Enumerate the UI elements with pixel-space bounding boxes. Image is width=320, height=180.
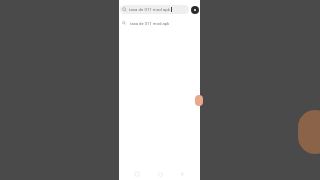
staticText: taxa de 011 mod apk — [130, 21, 170, 26]
button[interactable]: Back — [177, 169, 187, 179]
button[interactable]: Recent apps — [132, 169, 142, 179]
button[interactable]: Account — [191, 6, 199, 14]
button[interactable]: Search suggestion — [119, 18, 200, 28]
other: Search — [122, 7, 127, 12]
button[interactable]: Search — [120, 5, 189, 14]
button[interactable]: Home — [155, 169, 165, 179]
other: Search suggestion — [122, 21, 126, 25]
staticText: taxa de 011 mod apk — [129, 7, 171, 13]
